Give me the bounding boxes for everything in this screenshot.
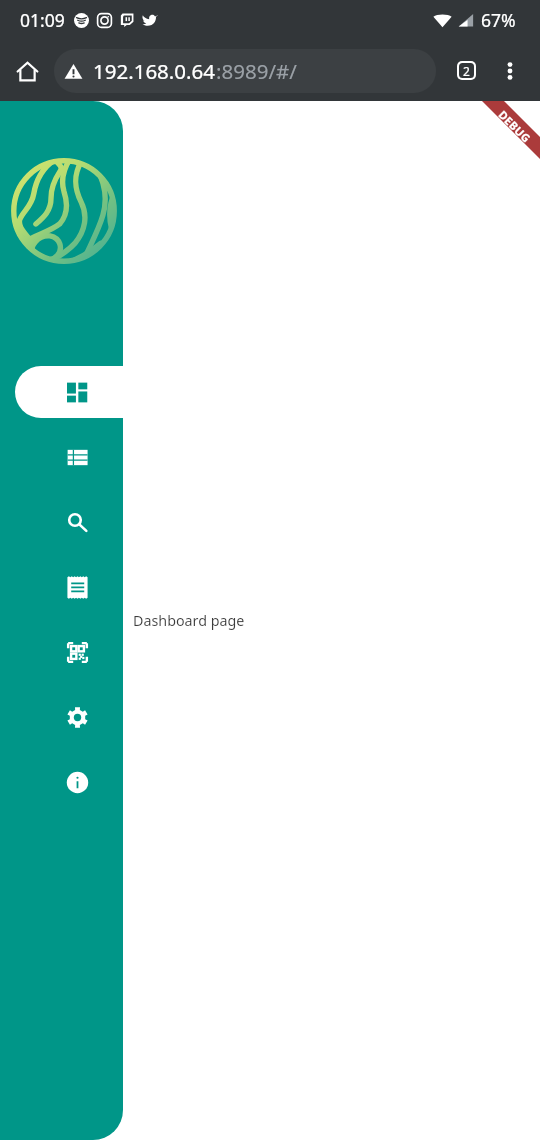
- button[interactable]: More options: [492, 53, 528, 89]
- button[interactable]: Receipts: [15, 561, 123, 613]
- button[interactable]: Dashboard: [15, 366, 123, 418]
- staticText: :8989/#/: [216, 57, 297, 85]
- button[interactable]: Tabs: [448, 52, 484, 88]
- button[interactable]: Info: [15, 756, 123, 808]
- staticText: 67%: [481, 8, 516, 32]
- staticText: 2: [463, 63, 470, 78]
- button[interactable]: Home: [7, 51, 47, 91]
- button[interactable]: List: [15, 431, 123, 483]
- staticText: DEBUG: [496, 107, 534, 146]
- staticText: Dashboard page: [133, 611, 245, 630]
- button[interactable]: Settings: [15, 691, 123, 743]
- button[interactable]: QR code: [15, 626, 123, 678]
- button[interactable]: 192.168.0.64: [54, 49, 436, 93]
- staticText: 192.168.0.64: [93, 57, 216, 85]
- staticText: 01:09: [20, 8, 65, 32]
- button[interactable]: Search: [15, 496, 123, 548]
